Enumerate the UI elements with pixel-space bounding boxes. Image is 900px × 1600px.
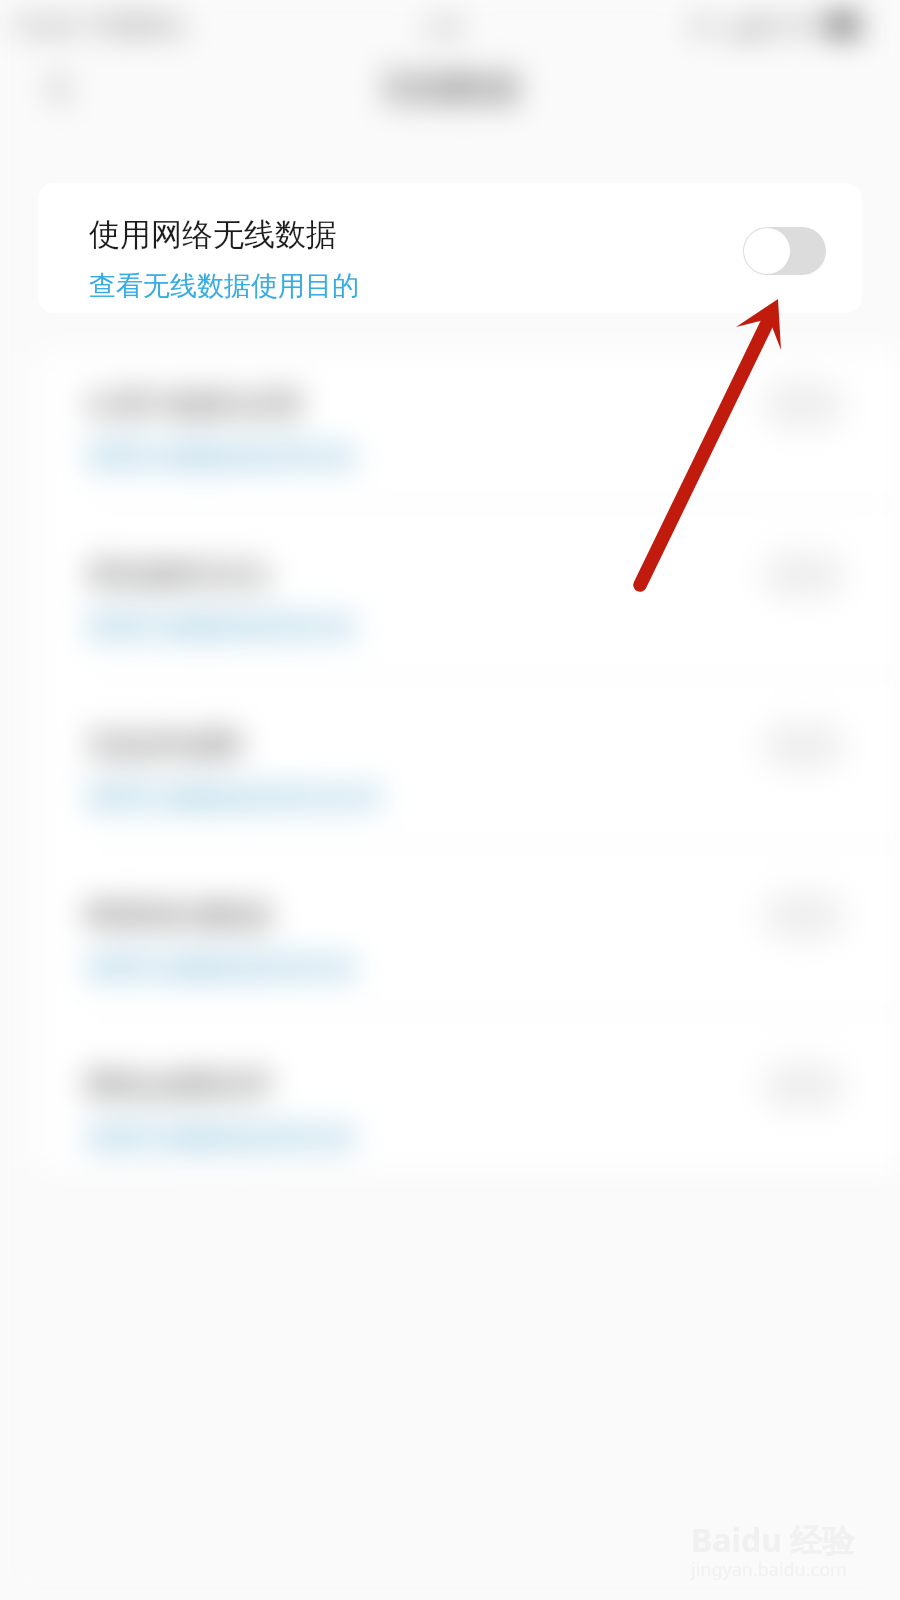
staticText: 使用网络无线数据: [89, 215, 337, 254]
button[interactable]: 使用网络无线数据: [38, 183, 862, 313]
staticText: Baidu 经验: [691, 1518, 855, 1562]
staticText: 无线局域网: [86, 726, 241, 765]
staticText: 无线数据: [380, 66, 520, 110]
staticText: 查看无线数据使用目的详: [86, 781, 383, 815]
button[interactable]: 蜂窝移动数据: [0, 844, 900, 1014]
staticText: 位置与隐私设置: [86, 385, 303, 424]
staticText: 网络诊断程序: [86, 1066, 272, 1105]
staticText: 查看无线数据使用目的: [86, 610, 356, 644]
button[interactable]: 无线局域网: [0, 674, 900, 844]
staticText: 系统服务定位: [86, 555, 272, 594]
staticText: 查看无线数据使用目的: [86, 440, 356, 474]
staticText: 查看无线数据使用目的: [86, 1121, 356, 1155]
staticText: 中国移动: [84, 10, 184, 41]
button[interactable]: 网络诊断程序: [0, 1014, 900, 1184]
staticText: 查看无线数据使用目的: [86, 951, 356, 985]
staticText: 86%: [772, 8, 820, 41]
staticText: 查看无线数据使用目的: [89, 269, 359, 303]
button[interactable]: 系统服务定位: [0, 503, 900, 673]
button[interactable]: Back: [20, 52, 94, 126]
staticText: 10:08: [10, 8, 74, 42]
staticText: 蜂窝移动数据: [86, 896, 272, 935]
button[interactable]: Use wireless data switch: [743, 227, 826, 275]
button[interactable]: 位置与隐私设置: [0, 333, 900, 503]
